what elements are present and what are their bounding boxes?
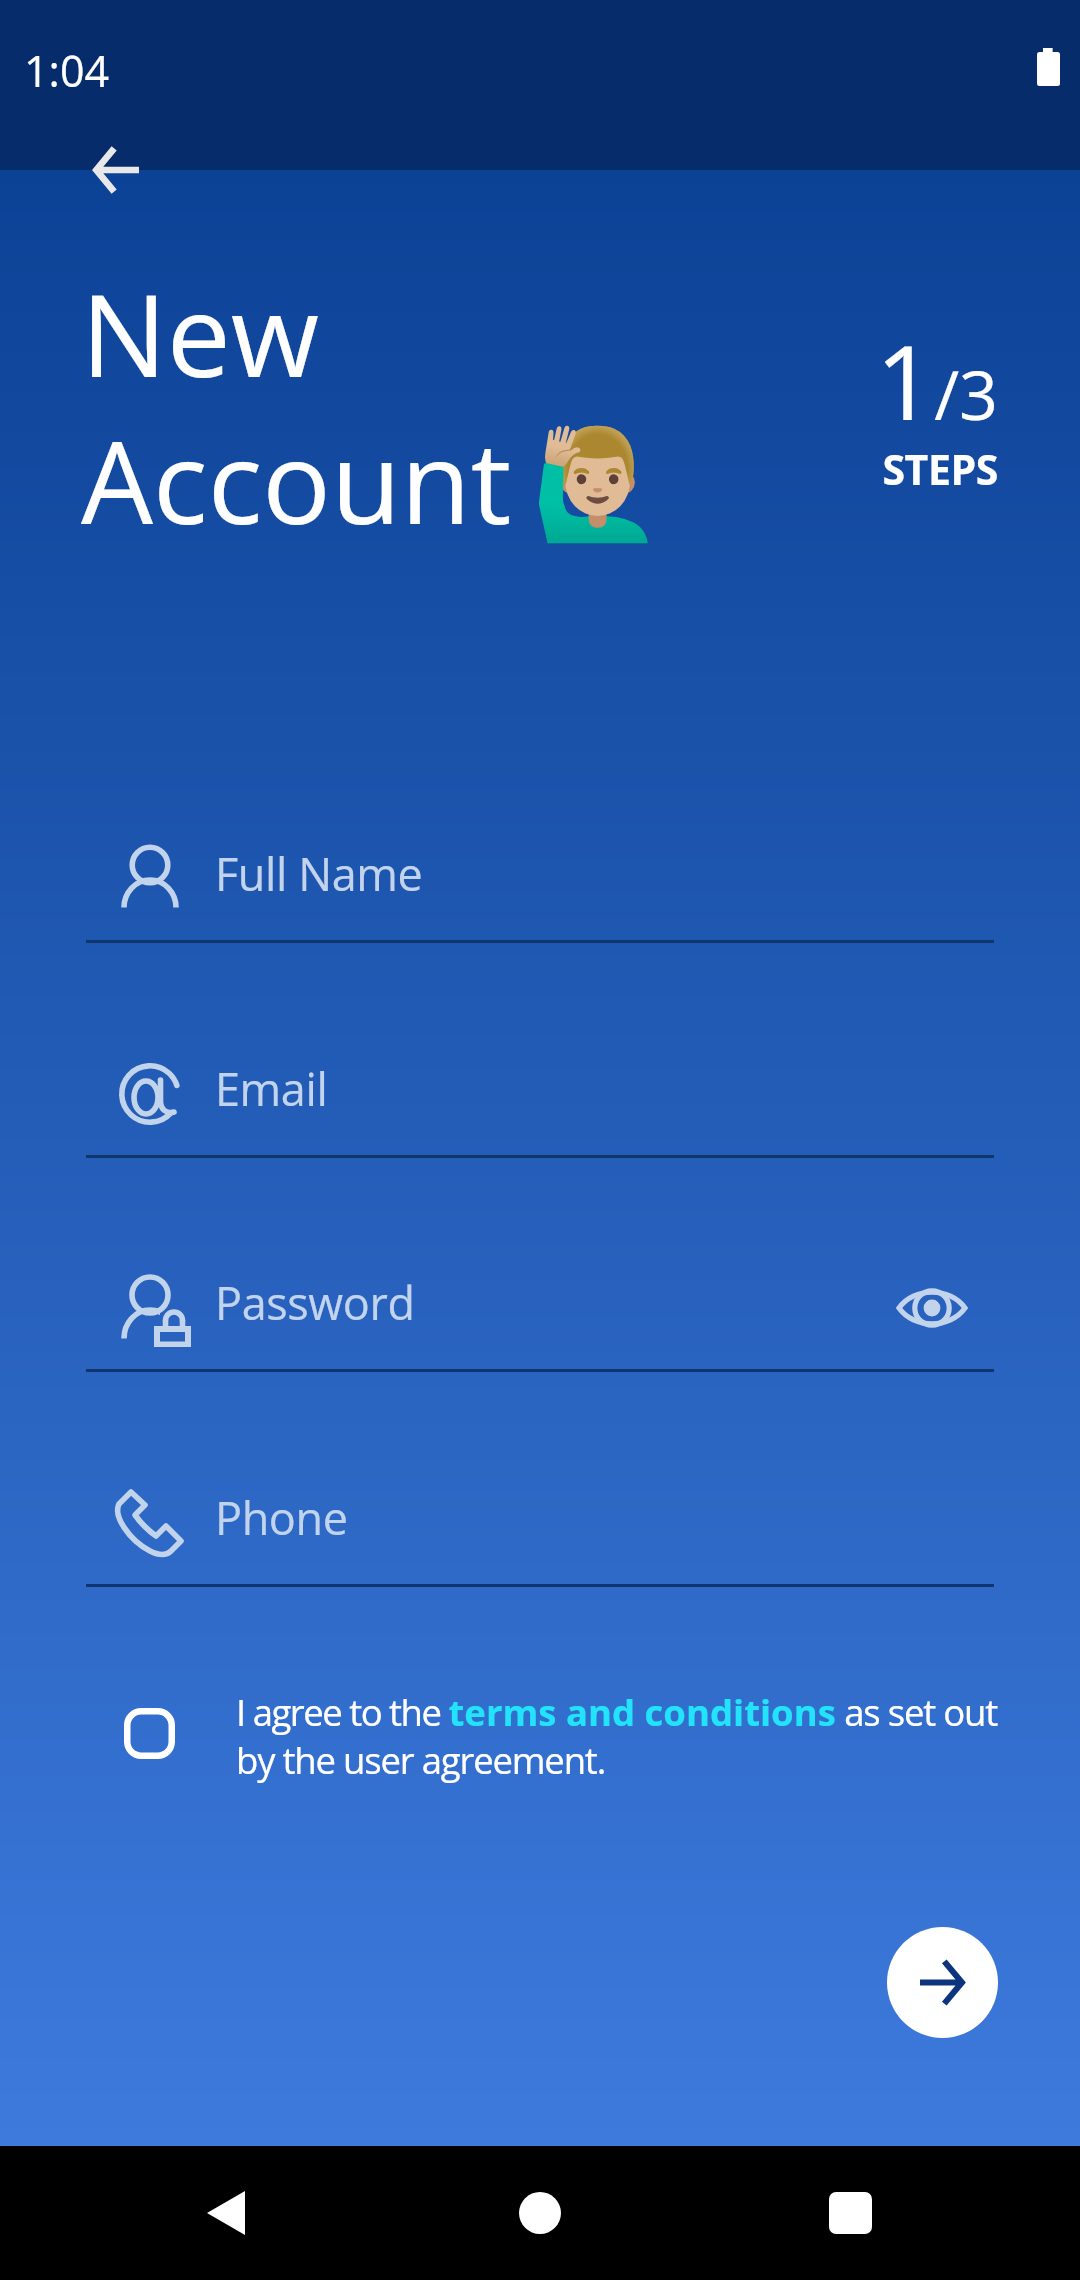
button[interactable]: Back xyxy=(178,2146,274,2280)
button[interactable]: Next step xyxy=(887,1927,998,2038)
staticText: I agree to the terms and conditions as s… xyxy=(236,1687,1000,1784)
staticText: Phone xyxy=(215,1487,348,1548)
staticText: Password xyxy=(215,1272,415,1333)
button[interactable]: Home xyxy=(492,2146,588,2280)
staticText: Email xyxy=(215,1058,328,1119)
button[interactable]: Show password xyxy=(888,1272,976,1344)
staticText: STEPS xyxy=(600,441,998,497)
button[interactable]: Recent apps xyxy=(802,2146,898,2280)
button[interactable]: Agree to terms and conditions xyxy=(119,1703,179,1763)
staticText: Full Name xyxy=(215,843,423,904)
staticText: 🙋🏼‍♂️ xyxy=(531,422,665,547)
staticText: New xyxy=(81,255,320,410)
button[interactable]: Back xyxy=(58,112,174,228)
staticText: Account xyxy=(81,402,512,557)
staticText: 1:04 xyxy=(24,41,110,100)
staticText: 1/3 xyxy=(600,311,998,450)
